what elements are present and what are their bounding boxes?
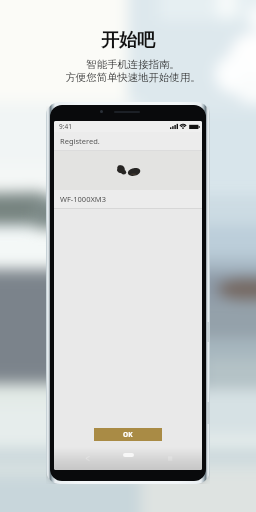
- button[interactable]: OK: [94, 428, 162, 441]
- staticText: WF-1000XM3: [60, 194, 106, 204]
- staticText: 智能手机连接指南。 方便您简单快速地开始使用。: [65, 58, 201, 84]
- staticText: Registered.: [60, 136, 100, 146]
- staticText: OK: [123, 430, 133, 439]
- button[interactable]: WF-1000XM3: [54, 190, 202, 208]
- staticText: 开始吧: [101, 29, 155, 52]
- staticText: 9:41: [59, 122, 72, 131]
